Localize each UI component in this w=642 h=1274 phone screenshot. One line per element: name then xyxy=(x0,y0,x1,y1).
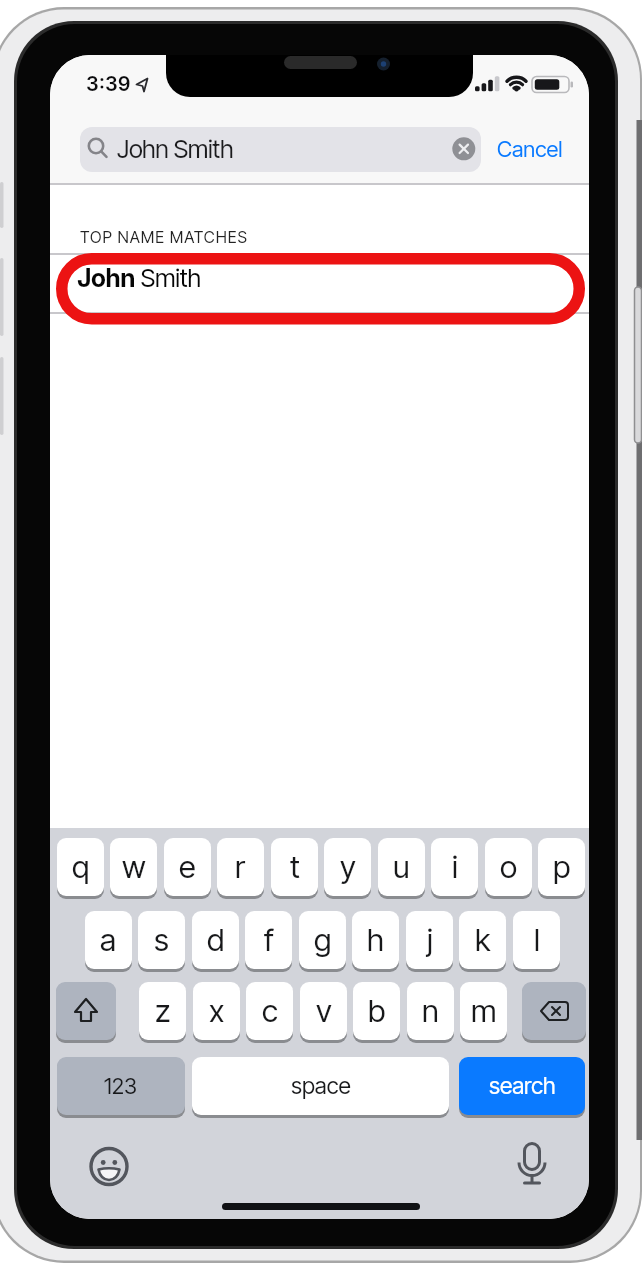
staticText: TOP NAME MATCHES xyxy=(80,227,248,246)
staticText: Cancel xyxy=(497,136,563,163)
button[interactable]: k xyxy=(459,911,506,971)
button[interactable]: l xyxy=(513,911,560,971)
staticText: John Smith xyxy=(77,263,201,293)
button[interactable]: u xyxy=(378,838,425,898)
button[interactable]: g xyxy=(299,911,346,971)
staticText: l xyxy=(534,921,540,959)
staticText: e xyxy=(179,848,196,886)
button[interactable] xyxy=(512,1142,552,1188)
staticText: x xyxy=(209,992,225,1030)
staticText: b xyxy=(368,992,386,1030)
button[interactable]: x xyxy=(193,982,240,1042)
button[interactable] xyxy=(88,1145,130,1187)
button[interactable]: d xyxy=(192,911,239,971)
staticText: u xyxy=(393,848,410,886)
button[interactable]: f xyxy=(245,911,292,971)
staticText: 123 xyxy=(104,1073,138,1100)
button[interactable]: o xyxy=(485,838,532,898)
staticText: z xyxy=(155,992,171,1030)
staticText: j xyxy=(427,921,433,959)
staticText: space xyxy=(291,1072,351,1100)
button[interactable] xyxy=(522,982,586,1042)
staticText: w xyxy=(122,848,146,886)
staticText: search xyxy=(489,1072,556,1100)
staticText: f xyxy=(264,921,274,959)
button[interactable]: s xyxy=(138,911,185,971)
staticText: s xyxy=(154,921,169,959)
staticText: h xyxy=(367,921,384,959)
button[interactable]: z xyxy=(139,982,186,1042)
staticText: g xyxy=(314,921,332,959)
button[interactable]: y xyxy=(324,838,371,898)
staticText: q xyxy=(72,848,90,886)
staticText: m xyxy=(471,992,497,1030)
button[interactable]: v xyxy=(300,982,347,1042)
staticText: k xyxy=(475,921,491,959)
staticText: o xyxy=(500,848,518,886)
button[interactable]: Cancel xyxy=(497,129,563,169)
staticText: i xyxy=(452,848,458,886)
staticText: a xyxy=(100,921,117,959)
button[interactable]: p xyxy=(538,838,585,898)
staticText: r xyxy=(235,848,246,886)
staticText: 3:39 xyxy=(86,72,131,96)
button[interactable]: r xyxy=(217,838,264,898)
button[interactable]: space xyxy=(192,1057,449,1117)
button[interactable]: a xyxy=(85,911,132,971)
button[interactable] xyxy=(80,127,481,172)
button[interactable]: 123 xyxy=(57,1057,185,1117)
staticText: c xyxy=(262,992,278,1030)
staticText: y xyxy=(340,848,356,886)
button[interactable]: c xyxy=(246,982,293,1042)
button[interactable]: n xyxy=(407,982,454,1042)
button[interactable]: e xyxy=(164,838,211,898)
button[interactable]: h xyxy=(352,911,399,971)
staticText: v xyxy=(316,992,332,1030)
button[interactable]: John Smith xyxy=(50,254,589,312)
button[interactable] xyxy=(56,982,116,1042)
button[interactable]: i xyxy=(431,838,478,898)
staticText: John Smith xyxy=(117,134,234,164)
button[interactable]: b xyxy=(353,982,400,1042)
button[interactable]: w xyxy=(110,838,157,898)
button[interactable]: t xyxy=(271,838,318,898)
button[interactable]: search xyxy=(459,1057,585,1117)
staticText: n xyxy=(422,992,439,1030)
button[interactable]: m xyxy=(460,982,507,1042)
staticText: p xyxy=(553,848,571,886)
staticText: d xyxy=(207,921,225,959)
staticText: t xyxy=(290,848,300,886)
button[interactable]: q xyxy=(57,838,104,898)
button[interactable]: j xyxy=(406,911,453,971)
